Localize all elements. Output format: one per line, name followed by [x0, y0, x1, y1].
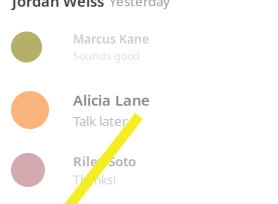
- button[interactable]: Alicia Lane: [0, 0, 278, 204]
- staticText: Jordan Weiss: [12, 0, 104, 11]
- button[interactable]: Riley Soto: [0, 0, 278, 204]
- staticText: Alicia Lane: [73, 90, 150, 110]
- staticText: Yesterday: [109, 0, 170, 10]
- staticText: Thanks!: [73, 172, 116, 188]
- button[interactable]: Marcus Kane: [0, 0, 278, 204]
- staticText: Marcus Kane: [73, 31, 149, 47]
- staticText: Riley Soto: [73, 152, 136, 170]
- staticText: Talk later: [73, 112, 128, 130]
- staticText: Sounds good: [73, 49, 140, 63]
